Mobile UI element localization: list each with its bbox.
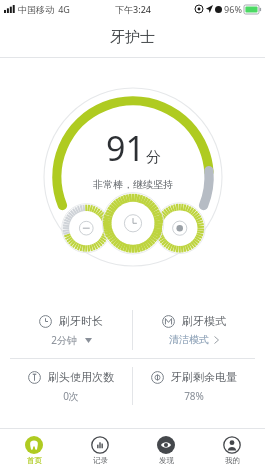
staticText: 4G — [58, 3, 70, 15]
staticText: 下午3:24 — [115, 3, 151, 15]
staticText: 清洁模式 — [169, 333, 209, 346]
staticText: 91 — [106, 125, 145, 171]
button[interactable]: 刷头使用次数 — [10, 359, 132, 413]
staticText: 我的 — [225, 456, 240, 465]
staticText: 中国移动 — [18, 4, 54, 15]
staticText: 0次 — [63, 389, 79, 403]
staticText: 记录 — [93, 456, 108, 465]
button[interactable]: 刷牙时长 — [10, 302, 132, 358]
button[interactable]: 记录 — [67, 429, 133, 471]
staticText: 非常棒，继续坚持 — [93, 178, 173, 191]
staticText: 首页 — [27, 456, 42, 465]
button[interactable]: 发现 — [133, 429, 199, 471]
staticText: 发现 — [159, 456, 174, 465]
staticText: 牙刷剩余电量 — [171, 370, 237, 384]
staticText: 牙护士 — [110, 28, 155, 47]
button[interactable]: 我的 — [199, 429, 265, 471]
staticText: 刷牙模式 — [182, 314, 226, 328]
staticText: 刷头使用次数 — [48, 370, 114, 384]
button[interactable]: 牙刷剩余电量 — [133, 359, 255, 413]
staticText: 刷牙时长 — [59, 314, 103, 328]
staticText: 2分钟 — [51, 333, 77, 347]
button[interactable]: 首页 — [0, 429, 67, 471]
button[interactable]: 刷牙模式 — [133, 302, 255, 358]
staticText: 96% — [224, 3, 242, 15]
staticText: 分 — [146, 148, 161, 167]
staticText: 78% — [184, 389, 204, 403]
